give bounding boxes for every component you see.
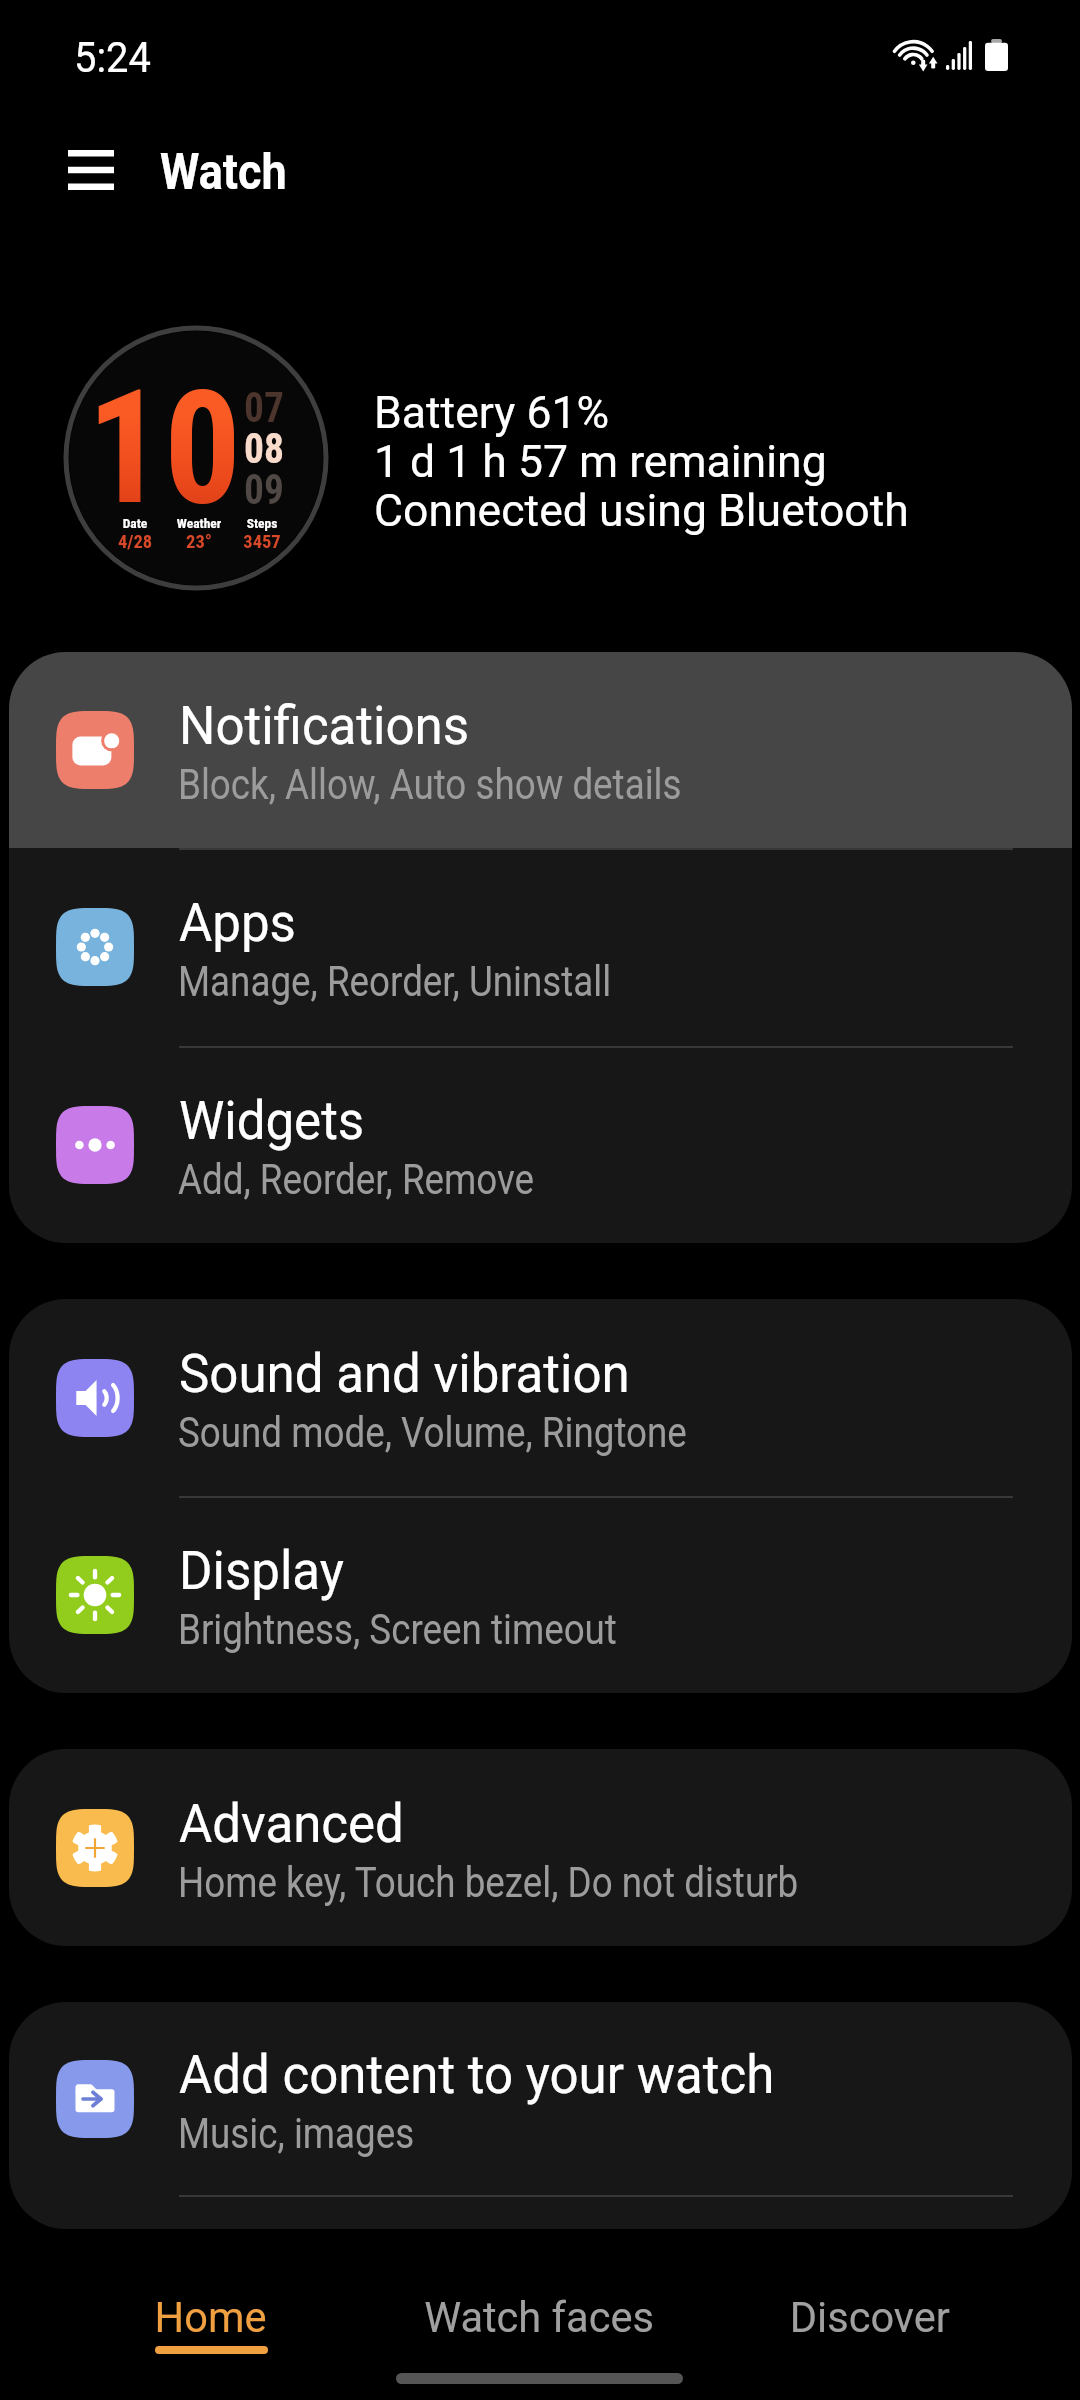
staticText: 1 d 1 h 57 m remaining	[374, 435, 827, 488]
staticText: Apps	[179, 891, 296, 954]
button[interactable]: Notifications	[9, 652, 1072, 848]
button[interactable]: Home	[46, 2270, 376, 2380]
staticText: 5:24	[74, 33, 151, 82]
staticText: Block, Allow, Auto show details	[178, 759, 682, 809]
button[interactable]: Advanced	[9, 1749, 1072, 1946]
staticText: Watch faces	[424, 2293, 655, 2342]
staticText: Watch	[160, 143, 287, 202]
staticText: Date	[75, 515, 195, 531]
staticText: 07	[244, 383, 284, 432]
staticText: Manage, Reorder, Uninstall	[178, 956, 611, 1006]
staticText: Sound mode, Volume, Ringtone	[178, 1407, 688, 1457]
button[interactable]: Open navigation menu	[46, 125, 136, 215]
staticText: Home	[155, 2293, 267, 2342]
button[interactable]: Sound and vibration	[9, 1299, 1072, 1496]
button[interactable]: Display	[9, 1496, 1072, 1693]
button[interactable]: Add content to your watch	[9, 2002, 1072, 2195]
staticText: Weather	[139, 515, 259, 531]
staticText: 10	[87, 355, 241, 540]
staticText: Add, Reorder, Remove	[178, 1154, 534, 1204]
staticText: Widgets	[179, 1089, 364, 1152]
staticText: 3457	[202, 531, 322, 553]
staticText: Connected using Bluetooth	[374, 484, 910, 537]
staticText: Steps	[202, 515, 322, 531]
button[interactable]: Watch faces	[374, 2270, 704, 2380]
staticText: 08	[244, 424, 284, 473]
staticText: Discover	[790, 2293, 950, 2342]
staticText: 23°	[139, 531, 259, 553]
button[interactable]: Widgets	[9, 1046, 1072, 1243]
staticText: Advanced	[179, 1792, 404, 1855]
staticText: Home key, Touch bezel, Do not disturb	[178, 1857, 799, 1907]
staticText: Add content to your watch	[179, 2043, 774, 2106]
button[interactable]: Apps	[9, 848, 1072, 1046]
staticText: Notifications	[179, 694, 469, 757]
staticText: 09	[244, 465, 284, 514]
button[interactable]: Galaxy Watch, Battery 61%, connected usi…	[0, 325, 1080, 595]
staticText: Battery 61%	[374, 386, 610, 439]
staticText: Display	[179, 1539, 344, 1602]
staticText: 4/28	[75, 531, 195, 553]
staticText: Sound and vibration	[179, 1342, 630, 1405]
staticText: Music, images	[178, 2108, 415, 2158]
staticText: Brightness, Screen timeout	[178, 1604, 617, 1654]
button[interactable]: Discover	[705, 2270, 1035, 2380]
